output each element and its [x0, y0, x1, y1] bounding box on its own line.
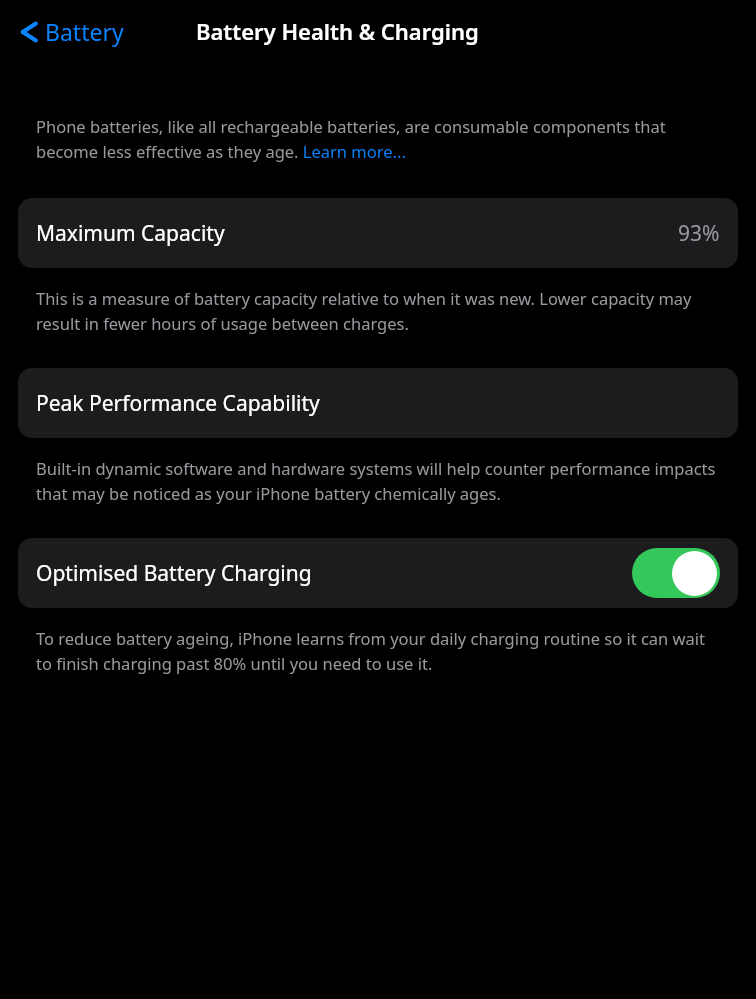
staticText: Phone batteries, like all rechargeable b…: [36, 113, 720, 163]
staticText: Optimised Battery Charging: [36, 559, 312, 588]
staticText: 93%: [678, 219, 720, 248]
staticText: Peak Performance Capability: [36, 389, 320, 418]
staticText: To reduce battery ageing, iPhone learns …: [36, 625, 720, 675]
staticText: Battery: [45, 16, 124, 47]
button[interactable]: Optimised Battery Charging toggle, on: [632, 548, 720, 598]
staticText: Maximum Capacity: [36, 219, 225, 248]
button[interactable]: Optimised Battery Charging: [18, 538, 738, 608]
staticText: Battery Health & Charging: [196, 16, 479, 46]
staticText: Built-in dynamic software and hardware s…: [36, 455, 720, 505]
button[interactable]: Battery: [14, 12, 130, 51]
button[interactable]: Maximum Capacity: [18, 198, 738, 268]
staticText: This is a measure of battery capacity re…: [36, 285, 720, 335]
button[interactable]: Peak Performance Capability: [18, 368, 738, 438]
